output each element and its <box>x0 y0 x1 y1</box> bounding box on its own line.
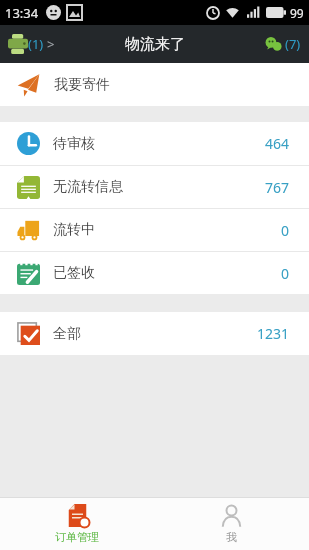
button[interactable]: 订单管理 <box>0 497 154 550</box>
button[interactable]: 我要寄件 <box>0 63 309 106</box>
staticText: 1231 <box>257 324 290 343</box>
staticText: 464 <box>265 134 290 153</box>
button[interactable]: 全部 <box>0 312 309 355</box>
staticText: 已签收 <box>53 264 95 282</box>
staticText: 0 <box>281 264 290 283</box>
staticText: (7) <box>285 35 301 53</box>
staticText: (1) <box>28 35 44 53</box>
staticText: > <box>47 35 55 53</box>
staticText: 订单管理 <box>55 530 99 544</box>
staticText: 流转中 <box>53 221 95 239</box>
button[interactable]: 已签收 <box>0 252 309 294</box>
staticText: 全部 <box>53 325 81 343</box>
staticText: 待审核 <box>53 135 95 153</box>
staticText: 0 <box>281 221 290 240</box>
staticText: 我要寄件 <box>54 76 110 94</box>
button[interactable]: 我 <box>154 497 309 550</box>
staticText: 767 <box>265 178 290 197</box>
staticText: 无流转信息 <box>53 178 123 196</box>
button[interactable]: 流转中 <box>0 209 309 251</box>
button[interactable]: (7) <box>265 34 301 54</box>
button[interactable]: (1) <box>8 34 55 54</box>
staticText: 物流来了 <box>125 35 185 54</box>
staticText: 13:34 <box>5 4 39 22</box>
staticText: 我 <box>226 530 237 544</box>
button[interactable]: 待审核 <box>0 122 309 165</box>
button[interactable]: 无流转信息 <box>0 166 309 208</box>
staticText: 99 <box>290 5 304 21</box>
